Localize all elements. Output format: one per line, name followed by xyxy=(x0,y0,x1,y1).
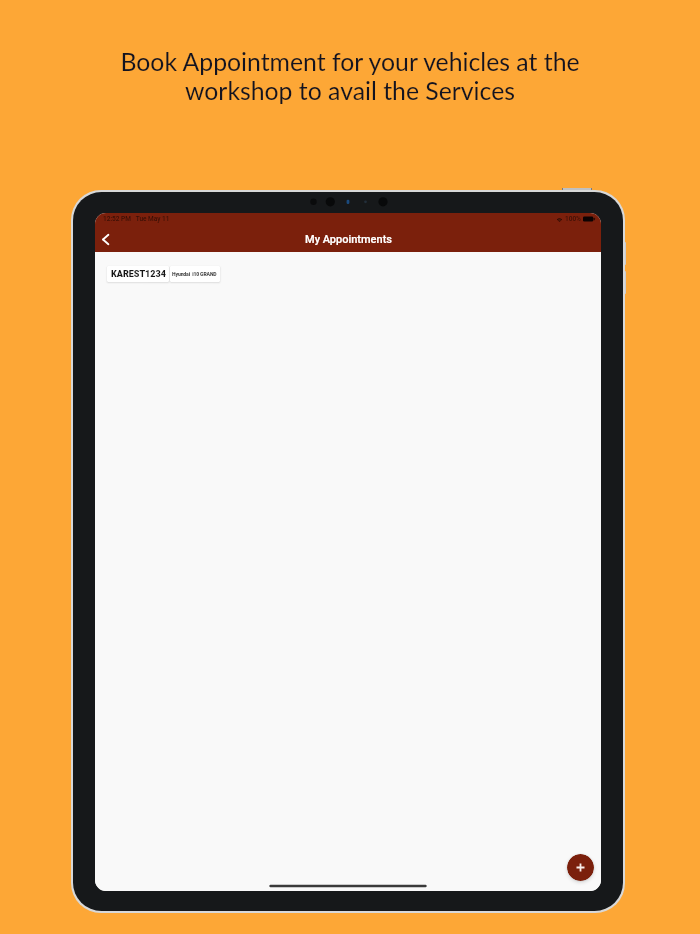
staticText: Hyundai i10 GRAND xyxy=(172,271,217,277)
button[interactable]: Back xyxy=(95,228,116,250)
staticText: Book Appointment for your vehicles at th… xyxy=(0,47,700,106)
staticText: KAREST1234 xyxy=(111,269,166,280)
button[interactable]: KAREST1234 xyxy=(107,266,220,282)
staticText: 12:52 PM Tue May 11 xyxy=(103,215,170,223)
staticText: 100% xyxy=(565,215,581,223)
button[interactable]: Add appointment xyxy=(567,854,594,881)
staticText: My Appointments xyxy=(305,233,392,246)
